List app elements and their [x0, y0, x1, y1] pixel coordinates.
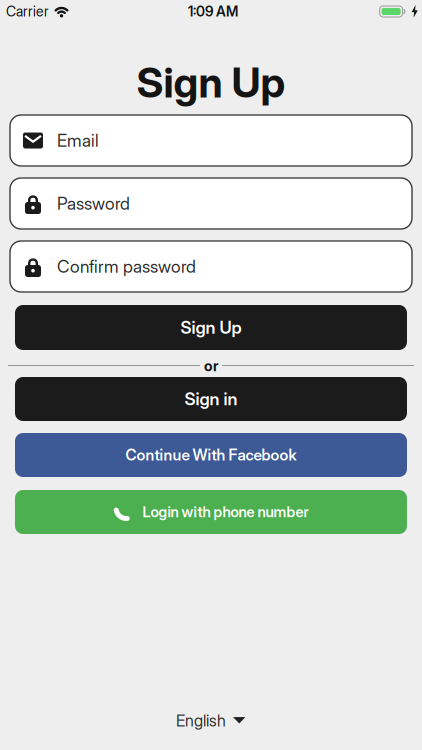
staticText: Carrier [6, 3, 49, 20]
button[interactable]: Password [10, 178, 412, 229]
staticText: Continue With Facebook [125, 446, 296, 464]
button[interactable]: Email [10, 115, 412, 166]
button[interactable]: Sign Up [15, 305, 407, 350]
staticText: Password [57, 193, 130, 214]
staticText: Sign Up [180, 317, 241, 338]
button[interactable]: English [176, 711, 246, 730]
staticText: Login with phone number [142, 503, 308, 521]
button[interactable]: Continue With Facebook [15, 433, 407, 477]
staticText: Sign in [184, 389, 237, 409]
staticText: Email [57, 130, 99, 151]
staticText: 1:09 AM [188, 3, 238, 20]
staticText: Sign Up [136, 58, 285, 107]
button[interactable]: Confirm password [10, 241, 412, 292]
staticText: Confirm password [57, 256, 196, 277]
button[interactable]: Login with phone number [15, 490, 407, 534]
button[interactable]: Sign in [15, 377, 407, 421]
staticText: English [176, 711, 226, 730]
staticText: or [204, 357, 218, 375]
